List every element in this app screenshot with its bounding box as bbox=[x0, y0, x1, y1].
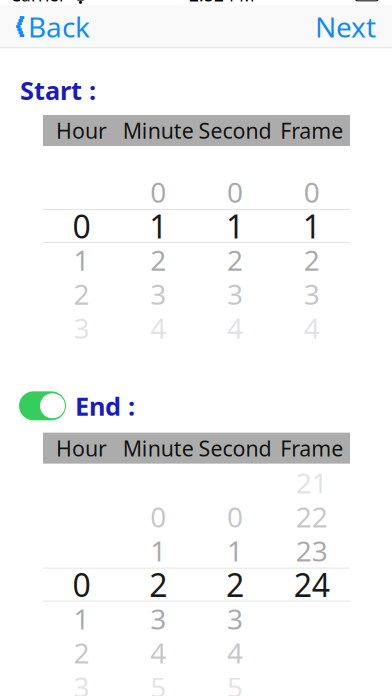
staticText: Second bbox=[198, 434, 271, 462]
staticText: 3 bbox=[150, 600, 166, 637]
staticText: 1 bbox=[303, 205, 321, 247]
staticText: 3 bbox=[150, 275, 166, 313]
staticText: 1 bbox=[73, 241, 89, 279]
staticText: Frame bbox=[280, 434, 343, 462]
staticText bbox=[78, 532, 85, 569]
staticText: 1 bbox=[73, 600, 89, 637]
staticText: 0 bbox=[150, 498, 166, 535]
staticText: 2 bbox=[150, 241, 166, 279]
staticText: 5 bbox=[227, 668, 243, 696]
button[interactable]: Next bbox=[301, 3, 392, 50]
staticText: 4 bbox=[227, 634, 243, 671]
staticText: Back bbox=[28, 8, 90, 45]
staticText: Minute bbox=[123, 434, 194, 462]
staticText: 0 bbox=[227, 173, 243, 211]
staticText: 1 bbox=[149, 205, 167, 247]
staticText: 0 bbox=[150, 173, 166, 211]
staticText: 0 bbox=[72, 563, 90, 606]
staticText: 5 bbox=[150, 668, 166, 696]
staticText: Minute bbox=[123, 116, 194, 145]
staticText: 4 bbox=[304, 309, 320, 347]
button[interactable]: Enable end time bbox=[19, 391, 66, 420]
staticText: 2 bbox=[73, 275, 89, 313]
staticText: 3 bbox=[227, 275, 243, 313]
staticText: End : bbox=[75, 389, 135, 423]
staticText: Frame bbox=[280, 116, 343, 145]
button[interactable]: Back bbox=[0, 3, 100, 50]
staticText: 23 bbox=[296, 532, 328, 569]
staticText bbox=[308, 600, 315, 637]
staticText bbox=[78, 173, 85, 211]
staticText: 22 bbox=[296, 498, 328, 535]
staticText: Start : bbox=[20, 73, 96, 107]
staticText: 3 bbox=[227, 600, 243, 637]
staticText: 2 bbox=[149, 563, 167, 606]
staticText: 2 bbox=[226, 563, 244, 606]
staticText: 1 bbox=[226, 205, 244, 247]
staticText: 0 bbox=[227, 498, 243, 535]
staticText: 4 bbox=[150, 634, 166, 671]
staticText: 24 bbox=[294, 563, 330, 606]
staticText: 4 bbox=[227, 309, 243, 347]
staticText: 1 bbox=[227, 532, 243, 569]
staticText: 3 bbox=[73, 309, 89, 347]
staticText: 2:52 PM bbox=[189, 0, 255, 6]
staticText: Carrier bbox=[10, 0, 66, 6]
staticText: 3 bbox=[73, 668, 89, 696]
staticText: 3 bbox=[304, 275, 320, 313]
staticText: 1 bbox=[150, 532, 166, 569]
staticText: 4 bbox=[150, 309, 166, 347]
staticText: Second bbox=[198, 116, 271, 145]
staticText: 0 bbox=[304, 173, 320, 211]
staticText: Next bbox=[315, 8, 376, 45]
staticText: 2 bbox=[304, 241, 320, 279]
staticText: 21 bbox=[296, 464, 328, 501]
staticText: 2 bbox=[73, 634, 89, 671]
staticText: 2 bbox=[227, 241, 243, 279]
staticText: 0 bbox=[72, 205, 90, 247]
staticText: Hour bbox=[56, 116, 107, 145]
staticText: Hour bbox=[56, 434, 107, 462]
